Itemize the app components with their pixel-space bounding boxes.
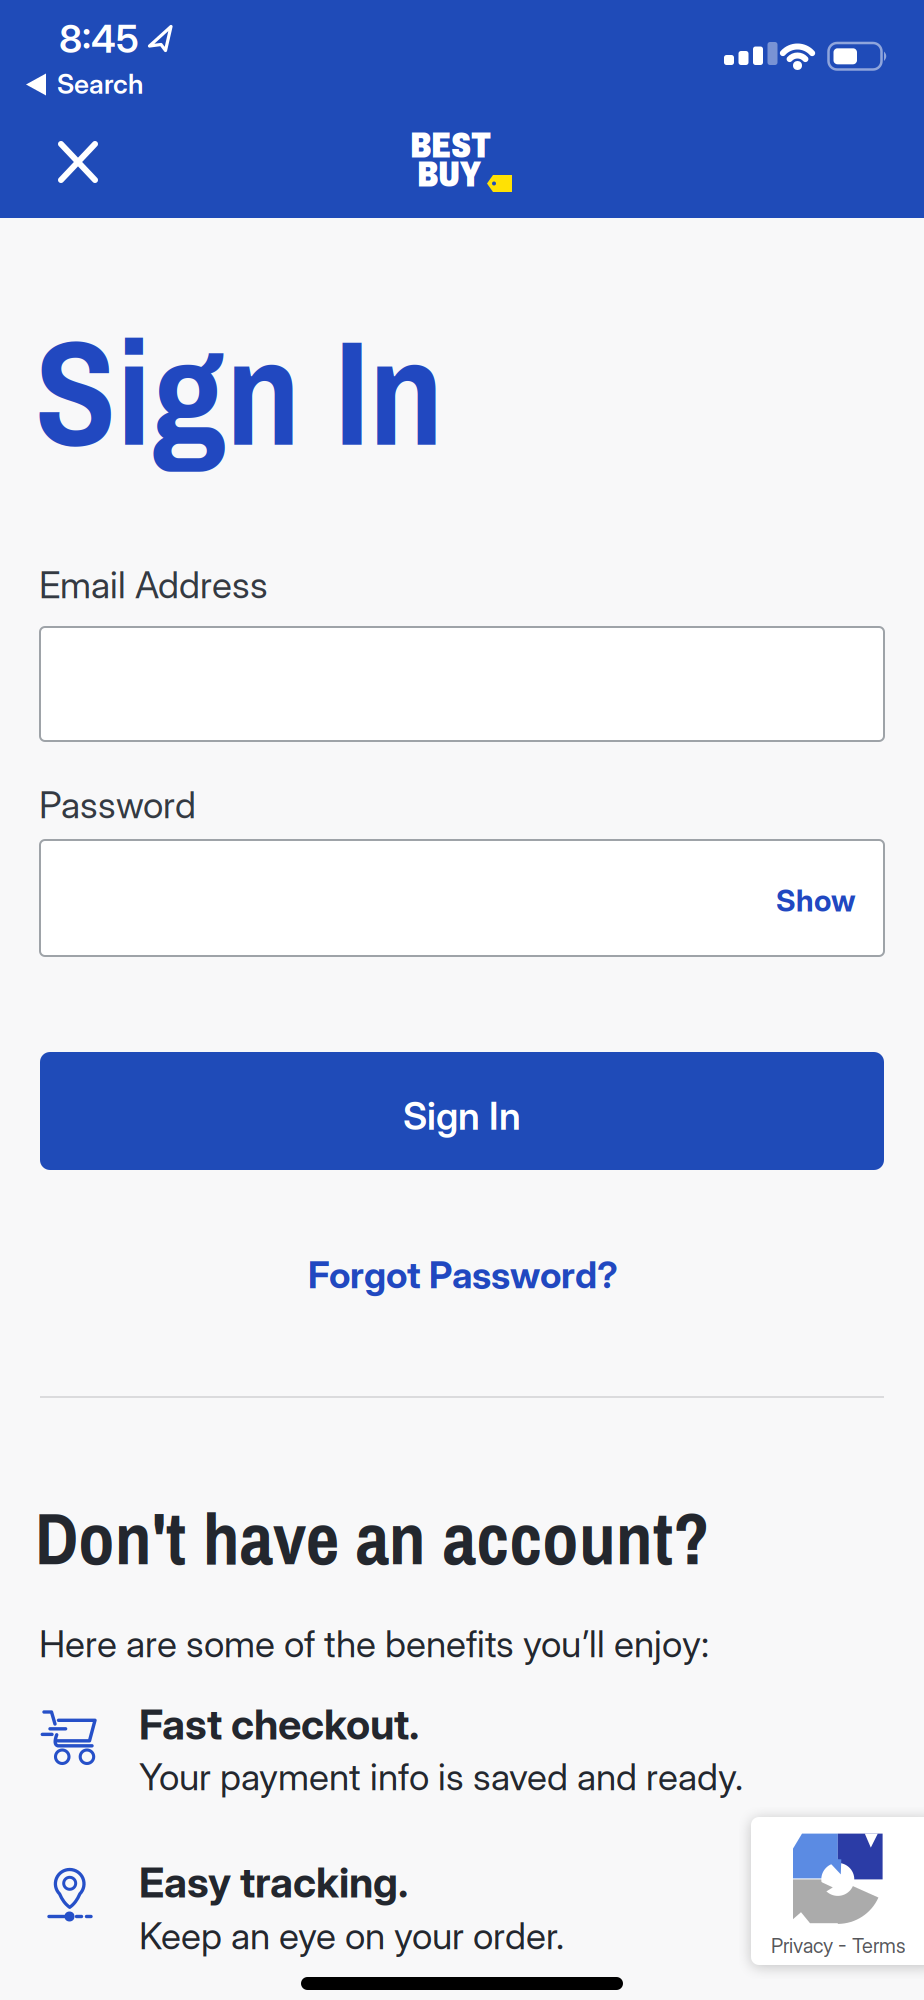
staticText: Show — [776, 883, 856, 918]
button[interactable]: Forgot Password? — [298, 1243, 628, 1307]
staticText: Search — [57, 68, 143, 100]
staticText: Privacy - Terms — [771, 1934, 905, 1958]
button[interactable]: Password — [40, 840, 884, 956]
staticText: Easy tracking. — [139, 1858, 408, 1907]
button[interactable]: Privacy - Terms — [771, 1934, 905, 1958]
button[interactable]: Show — [768, 875, 864, 926]
button[interactable]: Email Address — [40, 627, 884, 741]
staticText: Don't have an account? — [35, 1490, 710, 1586]
staticText: Sign In — [35, 293, 444, 489]
staticText: Keep an eye on your order. — [139, 1914, 564, 1958]
staticText: Forgot Password? — [308, 1253, 618, 1297]
staticText: BEST — [410, 126, 491, 165]
staticText: BUY — [417, 155, 481, 194]
staticText: Your payment info is saved and ready. — [139, 1755, 743, 1799]
button[interactable]: Close — [47, 131, 109, 193]
staticText: Password — [39, 783, 196, 827]
staticText: Fast checkout. — [139, 1700, 419, 1749]
staticText: 8:45 — [59, 16, 139, 61]
staticText: Sign In — [403, 1094, 521, 1138]
staticText: Email Address — [39, 563, 268, 607]
staticText: Here are some of the benefits you’ll enj… — [39, 1622, 709, 1666]
button[interactable]: Sign In — [40, 1052, 884, 1170]
